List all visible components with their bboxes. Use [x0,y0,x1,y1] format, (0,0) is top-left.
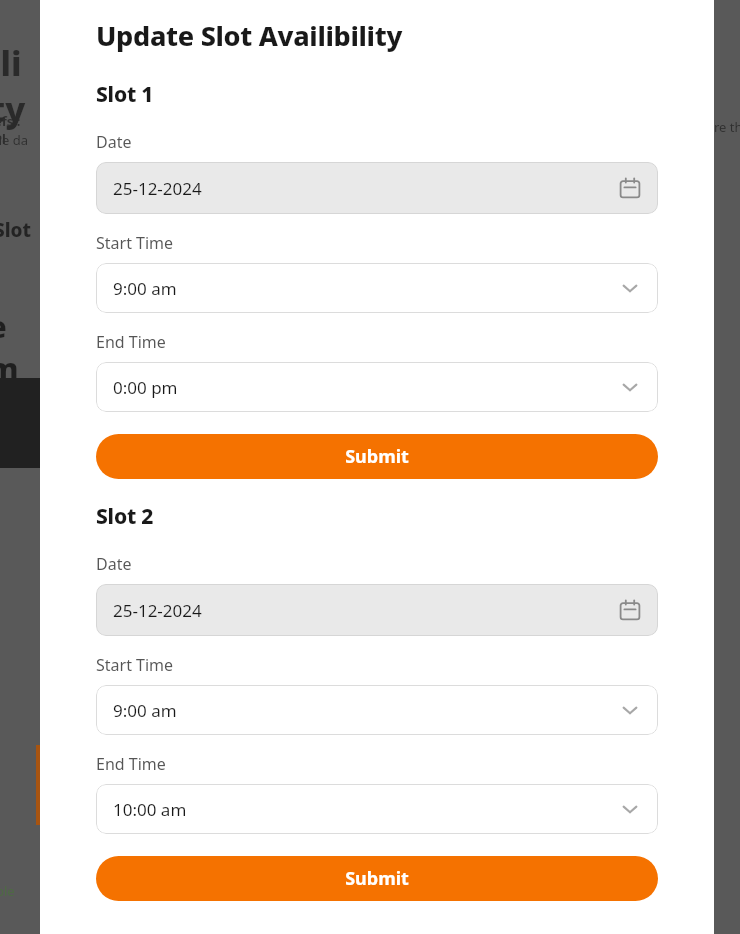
button[interactable]: 25-12-2024 [96,162,658,214]
staticText: Start Time [96,232,174,254]
staticText: End Time [96,753,166,775]
other: Pick date [619,599,641,621]
staticText: 9:00 am [113,277,620,300]
button[interactable]: 0:00 pm [96,362,658,412]
staticText: 25-12-2024 [113,599,619,622]
staticText: 10:00 am [113,798,620,821]
other: Expand [620,278,640,298]
staticText: 0:00 pm [113,376,620,399]
staticText: Start Time [96,654,174,676]
button[interactable]: 25-12-2024 [96,584,658,636]
button[interactable]: Submit [96,856,658,901]
staticText: re th [714,118,740,136]
staticText: Submit [345,444,409,469]
button[interactable]: 9:00 am [96,263,658,313]
staticText: ne da [0,131,29,149]
staticText: Update Slot Availibility [96,17,403,54]
staticText: efs : Pl [0,112,34,148]
other: Pick date [619,177,641,199]
button[interactable]: 9:00 am [96,685,658,735]
staticText: ble [0,882,15,900]
staticText: ility [0,40,30,132]
staticText: End Time [96,331,166,353]
staticText: Date [96,131,132,153]
staticText: Submit [345,866,409,891]
other: Expand [620,700,640,720]
other: Expand [620,377,640,397]
button[interactable]: 10:00 am [96,784,658,834]
staticText: 25-12-2024 [113,177,619,200]
button[interactable]: Submit [96,434,658,479]
staticText: 9:00 am [113,699,620,722]
staticText: Slot 2 [96,502,154,531]
other: Expand [620,799,640,819]
staticText: Slot 1 [96,80,154,109]
staticText: emb [0,305,28,431]
staticText: Date [96,553,132,575]
staticText: Slot [0,217,32,243]
